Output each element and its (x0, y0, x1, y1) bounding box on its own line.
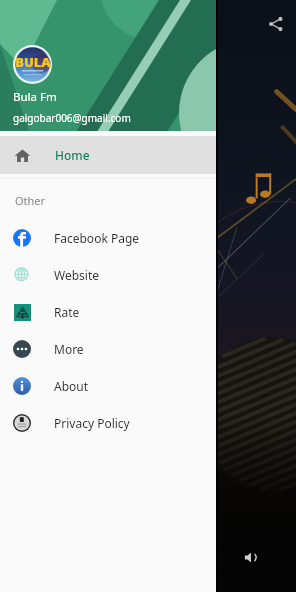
button[interactable]: Website (0, 256, 216, 293)
staticText: gaigobar006@gmail.com (13, 111, 131, 125)
staticText: Other (15, 193, 46, 208)
staticText: Facebook Page (54, 230, 140, 246)
staticText: Rate (54, 304, 80, 320)
staticText: More (54, 341, 84, 357)
staticText: About (54, 378, 89, 394)
staticText: BULA (15, 53, 51, 71)
staticText: Website (54, 267, 100, 283)
staticText: Home (55, 147, 90, 163)
button[interactable]: Facebook Page (0, 219, 216, 256)
staticText: Privacy Policy (54, 415, 130, 431)
button[interactable]: About (0, 367, 216, 404)
button[interactable]: More (0, 330, 216, 367)
staticText: Bula Fm (13, 89, 57, 105)
button[interactable]: Privacy Policy (0, 404, 216, 441)
button[interactable]: Rate (0, 293, 216, 330)
button[interactable]: Volume (238, 544, 264, 570)
button[interactable]: Home (0, 136, 216, 174)
button[interactable]: Share (262, 10, 290, 38)
